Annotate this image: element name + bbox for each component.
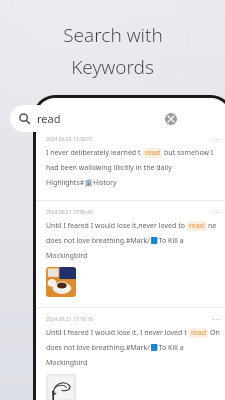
staticText: but somehow I [164,148,214,158]
staticText: ⋯ [212,315,220,324]
staticText: Keywords [71,54,154,80]
staticText: Highlights#🏛️History [46,178,117,188]
staticText: Mockingbird [46,251,88,261]
staticText: Search with [63,22,163,48]
staticText: Mockingbird [46,358,88,368]
staticText: I never deliberately learned t [46,148,141,158]
staticText: ⋯ [212,135,220,144]
staticText: had been wallowing illicitly in the dail… [46,163,220,173]
button[interactable]: 2024.06.21 17:16:16 [36,308,225,400]
staticText: 2024.06.03 11:30:51 [46,136,93,143]
staticText: read [189,221,204,231]
button[interactable]: More options [212,315,220,324]
staticText: read [145,148,160,158]
button[interactable] [46,267,76,297]
staticText: read [191,328,206,338]
staticText: Until I feared I would lose it,never lov… [46,221,185,231]
staticText: does not love breathing.#Mark/📘To Kill a [46,343,184,353]
button[interactable]: More options [212,208,220,217]
staticText: 2024.06.21 17:00:43 [46,209,93,216]
staticText: read [37,111,61,126]
staticText: does not love breathing.#Mark/📘To Kill a [46,236,184,246]
button[interactable] [46,374,76,400]
button[interactable]: 2024.06.21 17:00:43 [36,201,225,307]
staticText: ne [208,221,217,231]
staticText: ⋯ [212,208,220,217]
button[interactable]: read [10,105,186,132]
button[interactable]: More options [212,135,220,144]
button[interactable]: Clear search [165,113,177,125]
staticText: One [210,328,220,338]
button[interactable]: 2024.06.03 11:30:51 [36,128,225,200]
staticText: Until I feared I would lose it, I never … [46,328,187,338]
staticText: 2024.06.21 17:16:16 [46,316,93,323]
